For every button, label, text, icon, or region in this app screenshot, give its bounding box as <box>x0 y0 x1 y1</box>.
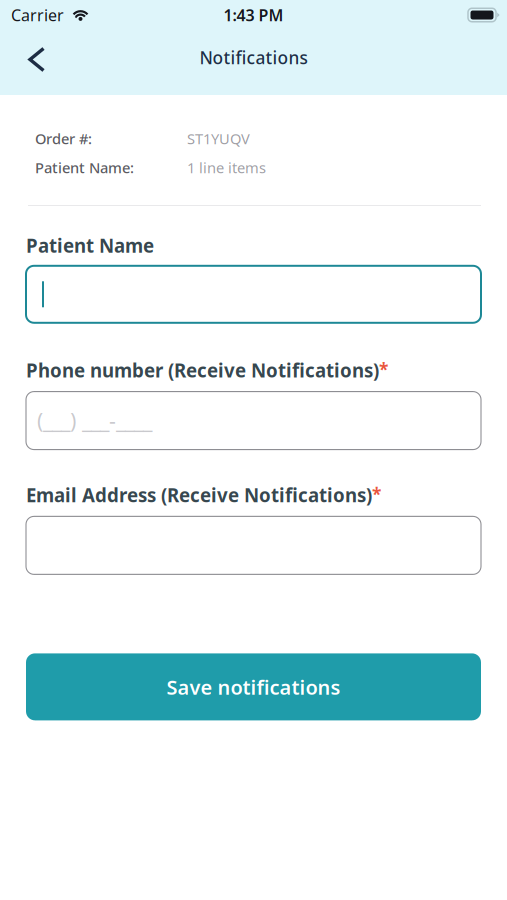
staticText: Notifications <box>199 46 307 69</box>
button[interactable]: Back <box>0 36 63 88</box>
staticText: Carrier <box>11 4 64 26</box>
staticText: Email Address (Receive Notifications) <box>26 483 372 507</box>
staticText: 1:43 PM <box>223 4 283 26</box>
staticText: * <box>372 483 381 506</box>
button[interactable]: Save notifications <box>26 653 481 720</box>
button[interactable]: Email Address text field <box>26 516 481 574</box>
staticText: Order #: <box>35 129 92 148</box>
staticText: Patient Name <box>26 233 154 258</box>
staticText: Patient Name: <box>35 158 134 177</box>
button[interactable]: (___) ___-____ <box>26 392 481 450</box>
staticText: * <box>379 358 388 381</box>
staticText: ST1YUQV <box>187 129 250 148</box>
staticText: (___) ___-____ <box>37 406 152 435</box>
staticText: 1 line items <box>187 158 266 177</box>
staticText: Save notifications <box>166 674 340 700</box>
button[interactable]: Patient Name text field <box>26 266 481 323</box>
staticText: Phone number (Receive Notifications) <box>26 358 379 383</box>
